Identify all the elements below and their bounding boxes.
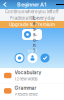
staticText: Lesson 1	[33, 15, 38, 54]
button[interactable]: Lesson 1	[14, 53, 24, 63]
staticText: Present tense	[14, 92, 37, 97]
button[interactable]: Upgrade to Premium	[0, 21, 64, 28]
button[interactable]: Lesson 2	[27, 53, 37, 63]
button[interactable]: Grammar	[0, 83, 64, 98]
staticText: Grammar	[14, 85, 36, 91]
staticText: 12 new words	[14, 77, 37, 81]
staticText: Continue where you left off	[5, 9, 59, 14]
staticText: Beginner A1	[17, 1, 46, 8]
staticText: Upgrade to Premium	[9, 22, 55, 27]
button[interactable]: Completed	[40, 53, 49, 62]
staticText: Unit 1	[27, 49, 36, 53]
button[interactable]: Back	[0, 0, 7, 9]
button[interactable]: Lesson 1	[22, 29, 42, 40]
button[interactable]: Vocabulary	[0, 68, 64, 83]
staticText: Practice a little every day	[9, 16, 54, 21]
staticText: Vocabulary	[14, 70, 41, 75]
